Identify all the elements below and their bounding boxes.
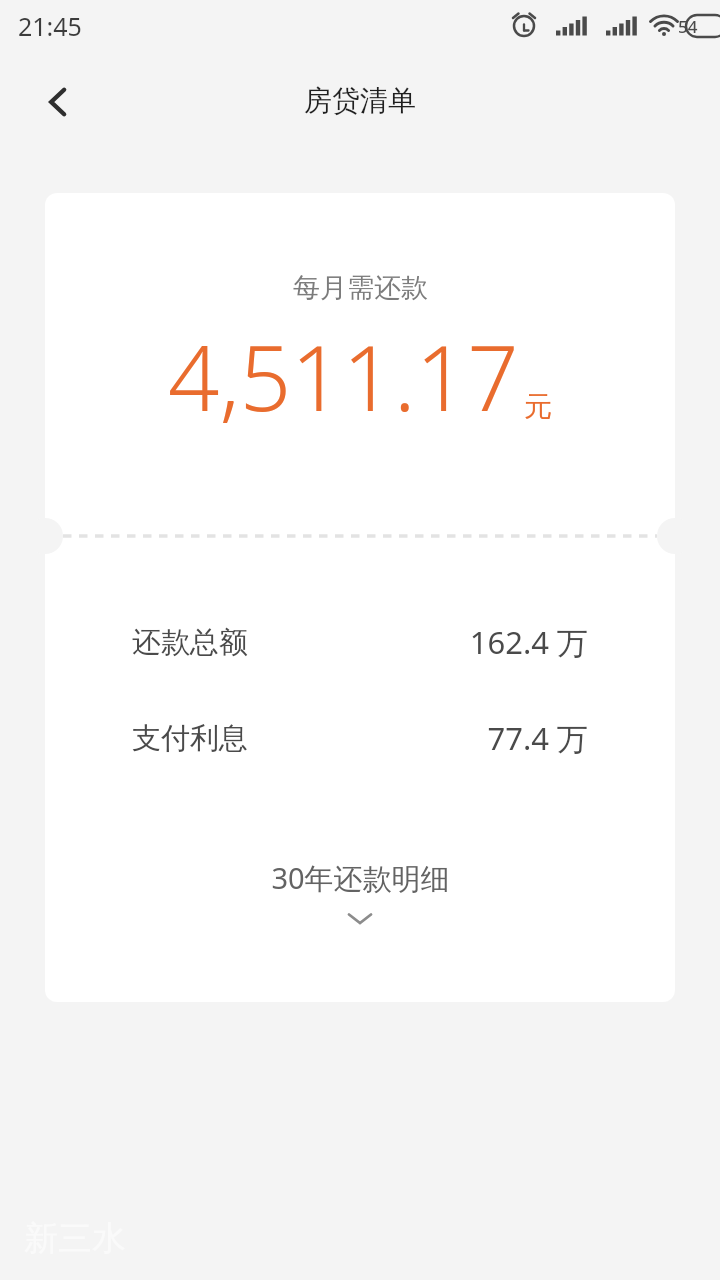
button[interactable]: 还款总额: [132, 621, 588, 663]
staticText: 54: [678, 15, 698, 38]
button[interactable]: Back: [22, 66, 94, 138]
staticText: 162.4 万: [469, 621, 588, 663]
staticText: 4,511.17: [168, 315, 519, 438]
staticText: 支付利息: [132, 720, 248, 757]
staticText: 还款总额: [132, 624, 248, 661]
staticText: 77.4 万: [487, 717, 588, 759]
staticText: 每月需还款: [293, 271, 428, 305]
button[interactable]: 支付利息: [132, 717, 588, 759]
staticText: 21:45: [18, 9, 82, 43]
staticText: 房贷清单: [304, 83, 416, 118]
staticText: 元: [524, 389, 552, 424]
button[interactable]: 30年还款明细: [45, 858, 675, 926]
staticText: 30年还款明细: [271, 858, 450, 898]
